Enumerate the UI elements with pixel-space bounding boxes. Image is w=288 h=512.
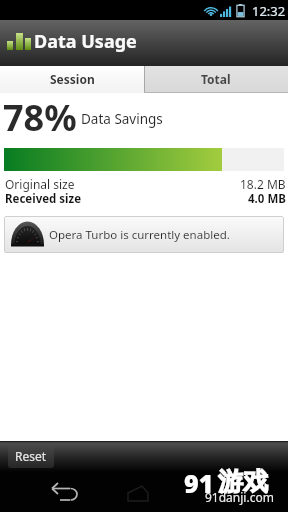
staticText: Data Usage xyxy=(34,29,137,54)
staticText: 18.2 MB xyxy=(240,176,286,192)
staticText: Session xyxy=(50,71,95,87)
staticText: Original size xyxy=(5,176,75,192)
staticText: 游戏 xyxy=(218,466,268,497)
staticText: Reset xyxy=(15,448,47,464)
button[interactable]: Total xyxy=(144,66,288,93)
button[interactable]: Opera Turbo is currently enabled. xyxy=(4,216,284,253)
staticText: Data Savings xyxy=(81,110,163,128)
button[interactable]: Home xyxy=(120,481,160,507)
staticText: 78% xyxy=(3,93,77,142)
staticText: 91 xyxy=(184,466,214,500)
staticText: 4.0 MB xyxy=(248,191,286,207)
staticText: Opera Turbo is currently enabled. xyxy=(49,227,230,243)
staticText: Total xyxy=(201,71,231,87)
button[interactable]: Reset xyxy=(8,444,54,468)
button[interactable]: Back xyxy=(41,481,87,507)
button[interactable]: Session xyxy=(0,66,144,93)
staticText: Received size xyxy=(5,191,82,207)
staticText: 12:32 xyxy=(252,2,286,20)
staticText: 91danji.com xyxy=(205,489,274,505)
